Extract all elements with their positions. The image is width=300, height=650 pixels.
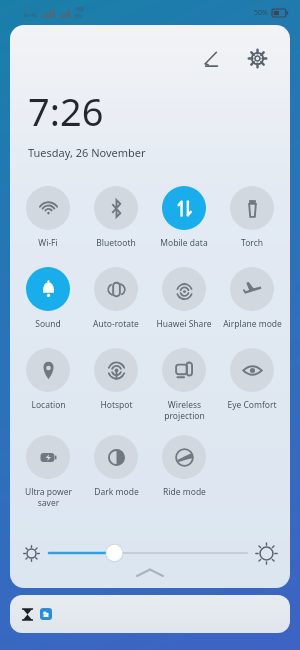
button[interactable]: Huawei Share [150,265,218,332]
staticText: 7:26 [28,85,104,137]
button[interactable]: Location [14,346,82,413]
staticText: Tuesday, 26 November [28,145,146,160]
staticText: Ride mode [163,486,206,498]
button[interactable]: Wi-Fi [14,184,82,251]
button[interactable]: Ride mode [150,433,218,500]
staticText: Eye Comfort [227,399,277,411]
button[interactable]: Hotspot [82,346,150,413]
button[interactable]: Settings [240,41,274,75]
button[interactable]: Bluetooth [82,184,150,251]
button[interactable]: Auto-rotate [82,265,150,332]
button[interactable]: Torch [218,184,286,251]
button[interactable]: Dark mode [82,433,150,500]
staticText: Sound [35,318,61,330]
button[interactable]: Ultra power saver [14,433,82,510]
button[interactable]: Sound [14,265,82,332]
staticText: Jio [24,7,29,12]
staticText: Hotspot [100,399,133,411]
button[interactable] [10,595,290,633]
staticText: B/s [75,13,83,20]
staticText: Wi-Fi [38,237,58,249]
button[interactable]: Edit [194,41,228,75]
staticText: Location [31,399,66,411]
staticText: 368 [75,6,84,13]
button[interactable]: Collapse [137,568,163,578]
staticText: Huawei Share [156,318,212,330]
button[interactable]: Mobile data [150,184,218,251]
staticText: Bluetooth [96,237,136,249]
staticText: 50% [254,8,268,18]
button[interactable]: Wireless projection [150,346,218,423]
staticText: Torch [241,237,263,249]
staticText: Auto-rotate [93,318,139,330]
button[interactable] [49,542,247,564]
button[interactable]: Airplane mode [218,265,286,332]
button[interactable]: Eye Comfort [218,346,286,413]
staticText: Wireless projection [164,399,205,421]
staticText: Mobile data [160,237,208,249]
staticText: Airplane mode [223,318,282,330]
staticText: Dark mode [94,486,139,498]
staticText: Jio 4G [24,12,38,19]
staticText: Ultra power saver [25,486,72,508]
